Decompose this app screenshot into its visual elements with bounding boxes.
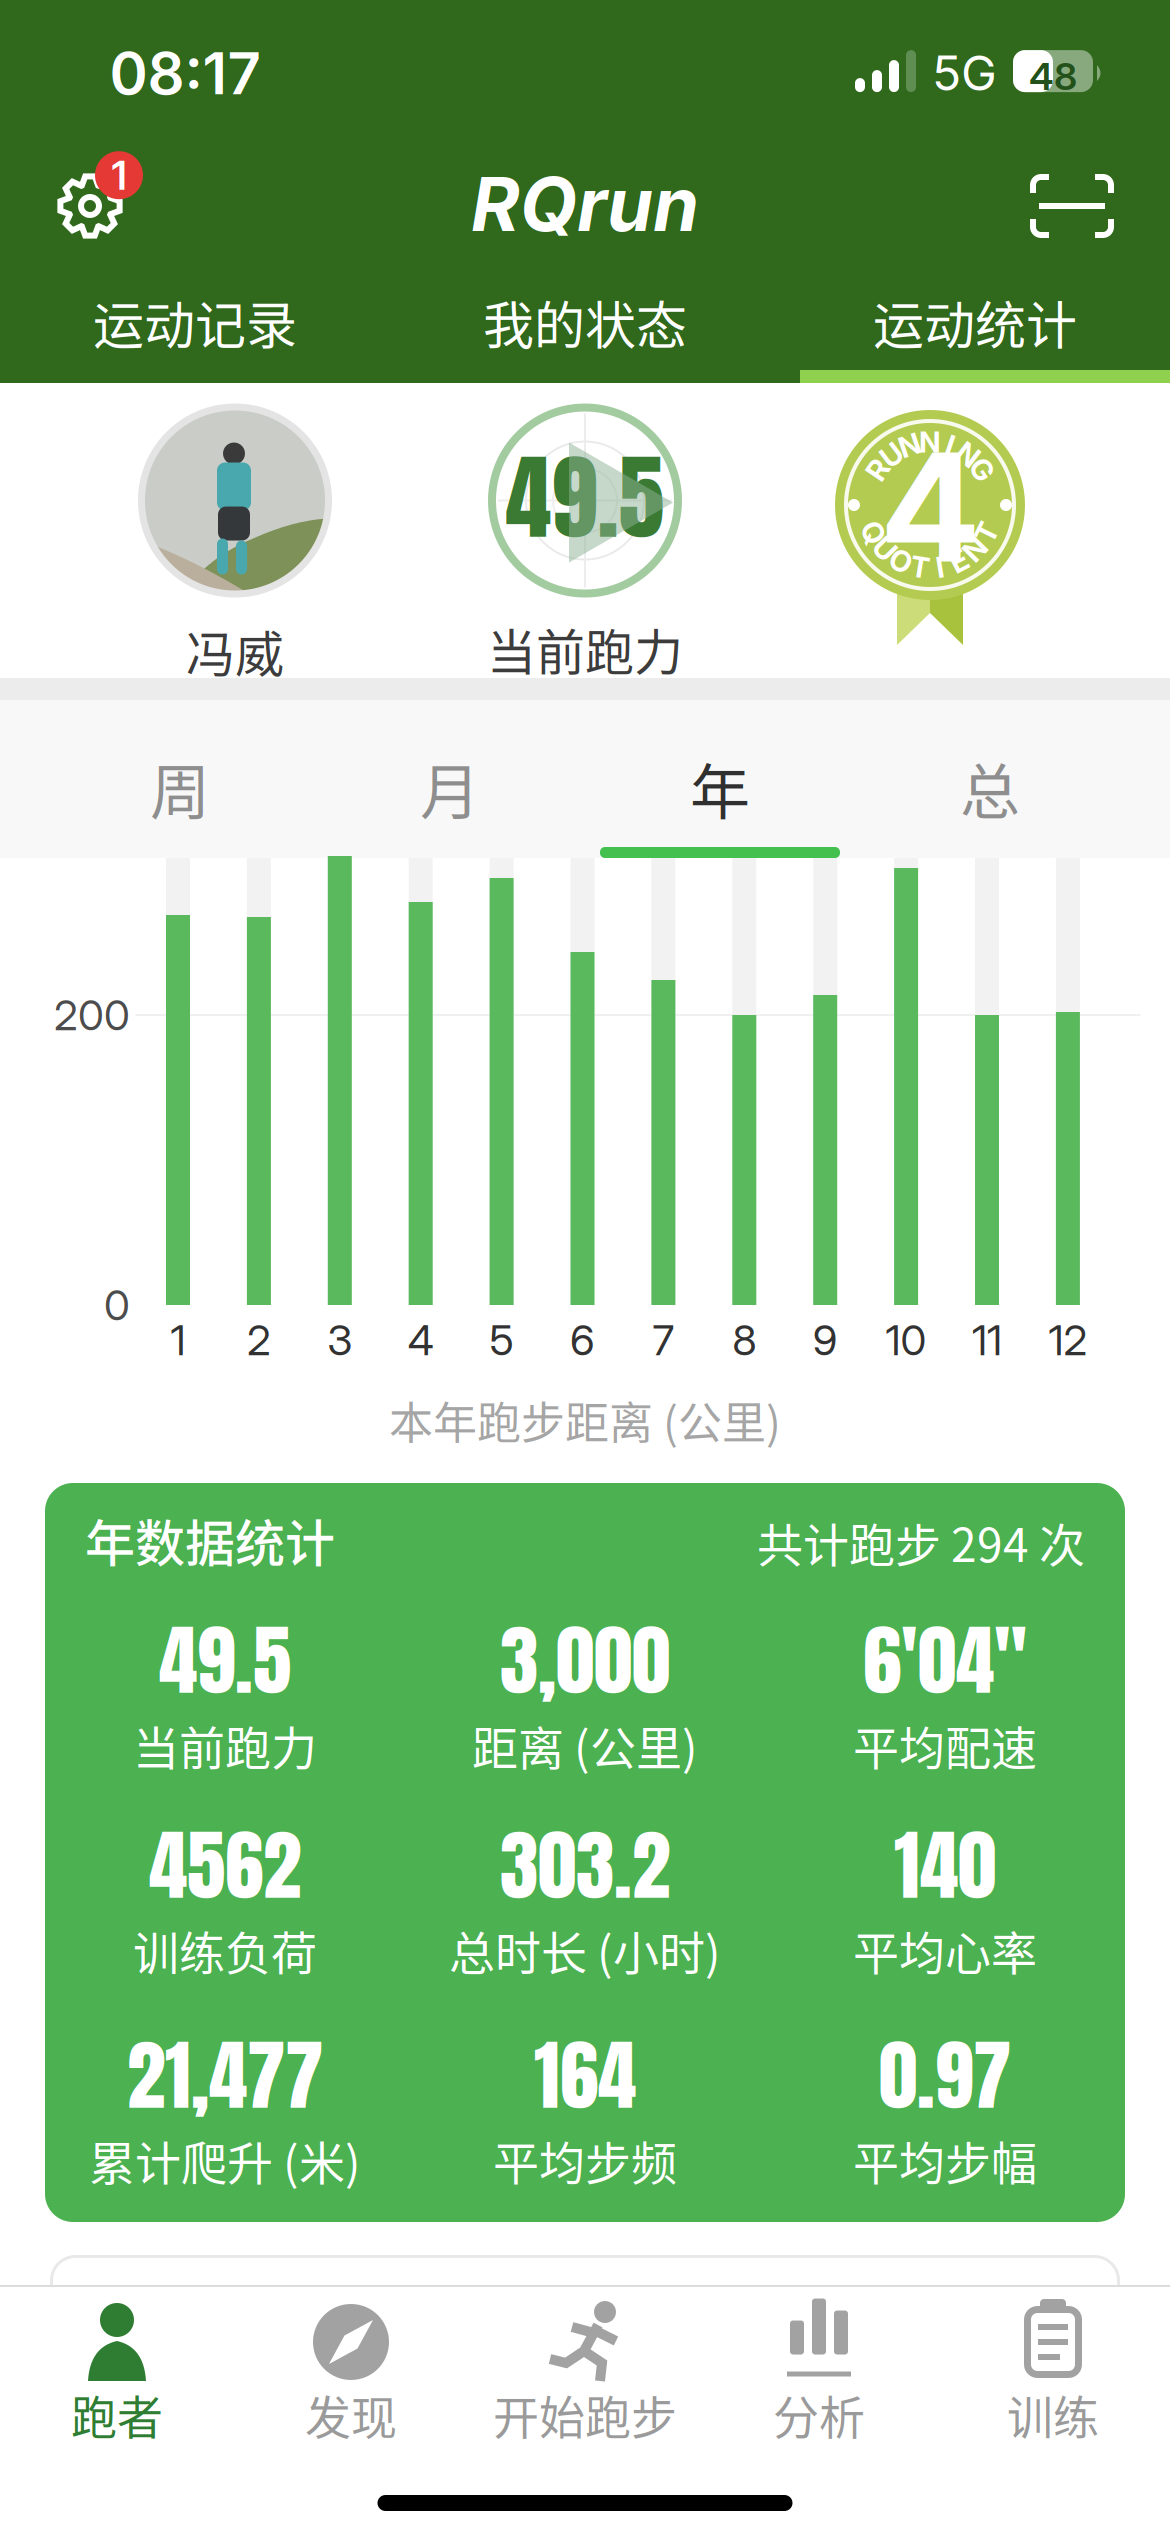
staticText: 冯威 bbox=[186, 615, 284, 686]
button[interactable]: 月 bbox=[420, 745, 480, 831]
staticText: 总 bbox=[960, 745, 1020, 831]
staticText: 运动记录 bbox=[93, 285, 297, 359]
staticText: 当前跑力 bbox=[487, 613, 683, 684]
button[interactable]: Running Quotient 4 bbox=[835, 355, 1025, 655]
staticText: N bbox=[919, 424, 941, 460]
staticText: 总时长 (小时) bbox=[449, 1917, 721, 1983]
staticText: 5G bbox=[932, 44, 997, 102]
staticText: 运动统计 bbox=[873, 285, 1077, 359]
staticText: 49.5 bbox=[159, 1602, 291, 1718]
staticText: 4 bbox=[879, 416, 980, 598]
staticText: 距离 (公里) bbox=[472, 1712, 698, 1778]
staticText: 周 bbox=[150, 745, 210, 831]
staticText: N bbox=[957, 437, 979, 472]
staticText: 1 bbox=[170, 1315, 185, 1365]
staticText: N bbox=[899, 428, 921, 463]
staticText: Q bbox=[862, 515, 884, 550]
button[interactable]: 分析 bbox=[702, 2303, 936, 2448]
button[interactable]: 运动记录 bbox=[0, 285, 390, 359]
staticText: 10 bbox=[886, 1315, 927, 1365]
staticText: 3 bbox=[327, 1315, 352, 1365]
staticText: 1 bbox=[111, 151, 126, 199]
staticText: 当前跑力 bbox=[133, 1712, 317, 1778]
staticText: 48 bbox=[1029, 53, 1077, 99]
staticText: 共计跑步 294 次 bbox=[757, 1509, 1085, 1575]
staticText: 5 bbox=[490, 1315, 514, 1365]
staticText: 分析 bbox=[773, 2381, 865, 2448]
staticText: 303.2 bbox=[500, 1807, 670, 1923]
staticText: 6'04" bbox=[863, 1602, 1027, 1718]
button[interactable]: 发现 bbox=[234, 2303, 468, 2448]
staticText: 发现 bbox=[305, 2381, 397, 2448]
staticText: 月 bbox=[420, 745, 480, 831]
button[interactable]: 总 bbox=[960, 745, 1020, 831]
button[interactable]: 年 bbox=[690, 745, 750, 831]
button[interactable]: 当前跑力 49.5 bbox=[487, 403, 683, 684]
staticText: 12 bbox=[1048, 1315, 1087, 1365]
staticText: R bbox=[868, 452, 887, 487]
staticText: 6 bbox=[570, 1315, 595, 1365]
staticText: 7 bbox=[652, 1315, 674, 1365]
staticText: 0 bbox=[104, 1280, 130, 1330]
staticText: 年 bbox=[690, 745, 750, 831]
staticText: E bbox=[950, 543, 968, 578]
staticText: 8 bbox=[732, 1315, 756, 1365]
staticText: 训练 bbox=[1007, 2381, 1099, 2448]
button[interactable]: 训练 bbox=[936, 2303, 1170, 2448]
staticText: O bbox=[890, 543, 912, 578]
staticText: 0.97 bbox=[879, 2017, 1011, 2133]
staticText: 4 bbox=[408, 1315, 434, 1365]
staticText: 2 bbox=[247, 1315, 271, 1365]
staticText: 164 bbox=[534, 2017, 636, 2133]
button[interactable]: 开始跑步 bbox=[468, 2303, 702, 2448]
staticText: N bbox=[964, 531, 986, 566]
button[interactable]: Settings bbox=[57, 173, 123, 239]
staticText: 平均配速 bbox=[853, 1712, 1037, 1778]
staticText: 跑者 bbox=[71, 2381, 163, 2448]
staticText: I bbox=[936, 550, 944, 585]
button[interactable]: 跑者 bbox=[0, 2303, 234, 2448]
staticText: 开始跑步 bbox=[493, 2381, 677, 2448]
staticText: 49.5 bbox=[505, 428, 664, 567]
button[interactable]: 运动统计 bbox=[780, 285, 1170, 359]
staticText: U bbox=[874, 531, 895, 566]
staticText: 本年跑步距离 (公里) bbox=[389, 1388, 781, 1452]
staticText: 21,477 bbox=[127, 2017, 323, 2133]
staticText: 我的状态 bbox=[483, 285, 687, 359]
staticText: 平均步幅 bbox=[853, 2127, 1037, 2193]
staticText: U bbox=[881, 437, 902, 472]
staticText: 4562 bbox=[149, 1807, 301, 1923]
button[interactable]: 周 bbox=[150, 745, 210, 831]
staticText: 年数据统计 bbox=[85, 1504, 335, 1576]
staticText: 平均步频 bbox=[493, 2127, 677, 2193]
staticText: 140 bbox=[894, 1807, 996, 1923]
staticText: T bbox=[910, 550, 929, 585]
staticText: 11 bbox=[972, 1315, 1002, 1365]
button[interactable]: 冯威 个人主页 bbox=[138, 403, 332, 686]
staticText: 9 bbox=[813, 1315, 838, 1365]
staticText: 训练负荷 bbox=[133, 1917, 317, 1983]
button[interactable]: 我的状态 bbox=[390, 285, 780, 359]
staticText: RQrun bbox=[471, 159, 699, 249]
staticText: 平均心率 bbox=[853, 1917, 1037, 1983]
staticText: T bbox=[977, 515, 996, 550]
staticText: 累计爬升 (米) bbox=[89, 2127, 361, 2193]
staticText: 08:17 bbox=[109, 38, 260, 108]
staticText: G bbox=[971, 452, 993, 487]
staticText: 3,000 bbox=[500, 1602, 670, 1718]
staticText: I bbox=[946, 428, 954, 463]
button[interactable]: Scan bbox=[1033, 177, 1113, 237]
staticText: 200 bbox=[54, 990, 130, 1040]
